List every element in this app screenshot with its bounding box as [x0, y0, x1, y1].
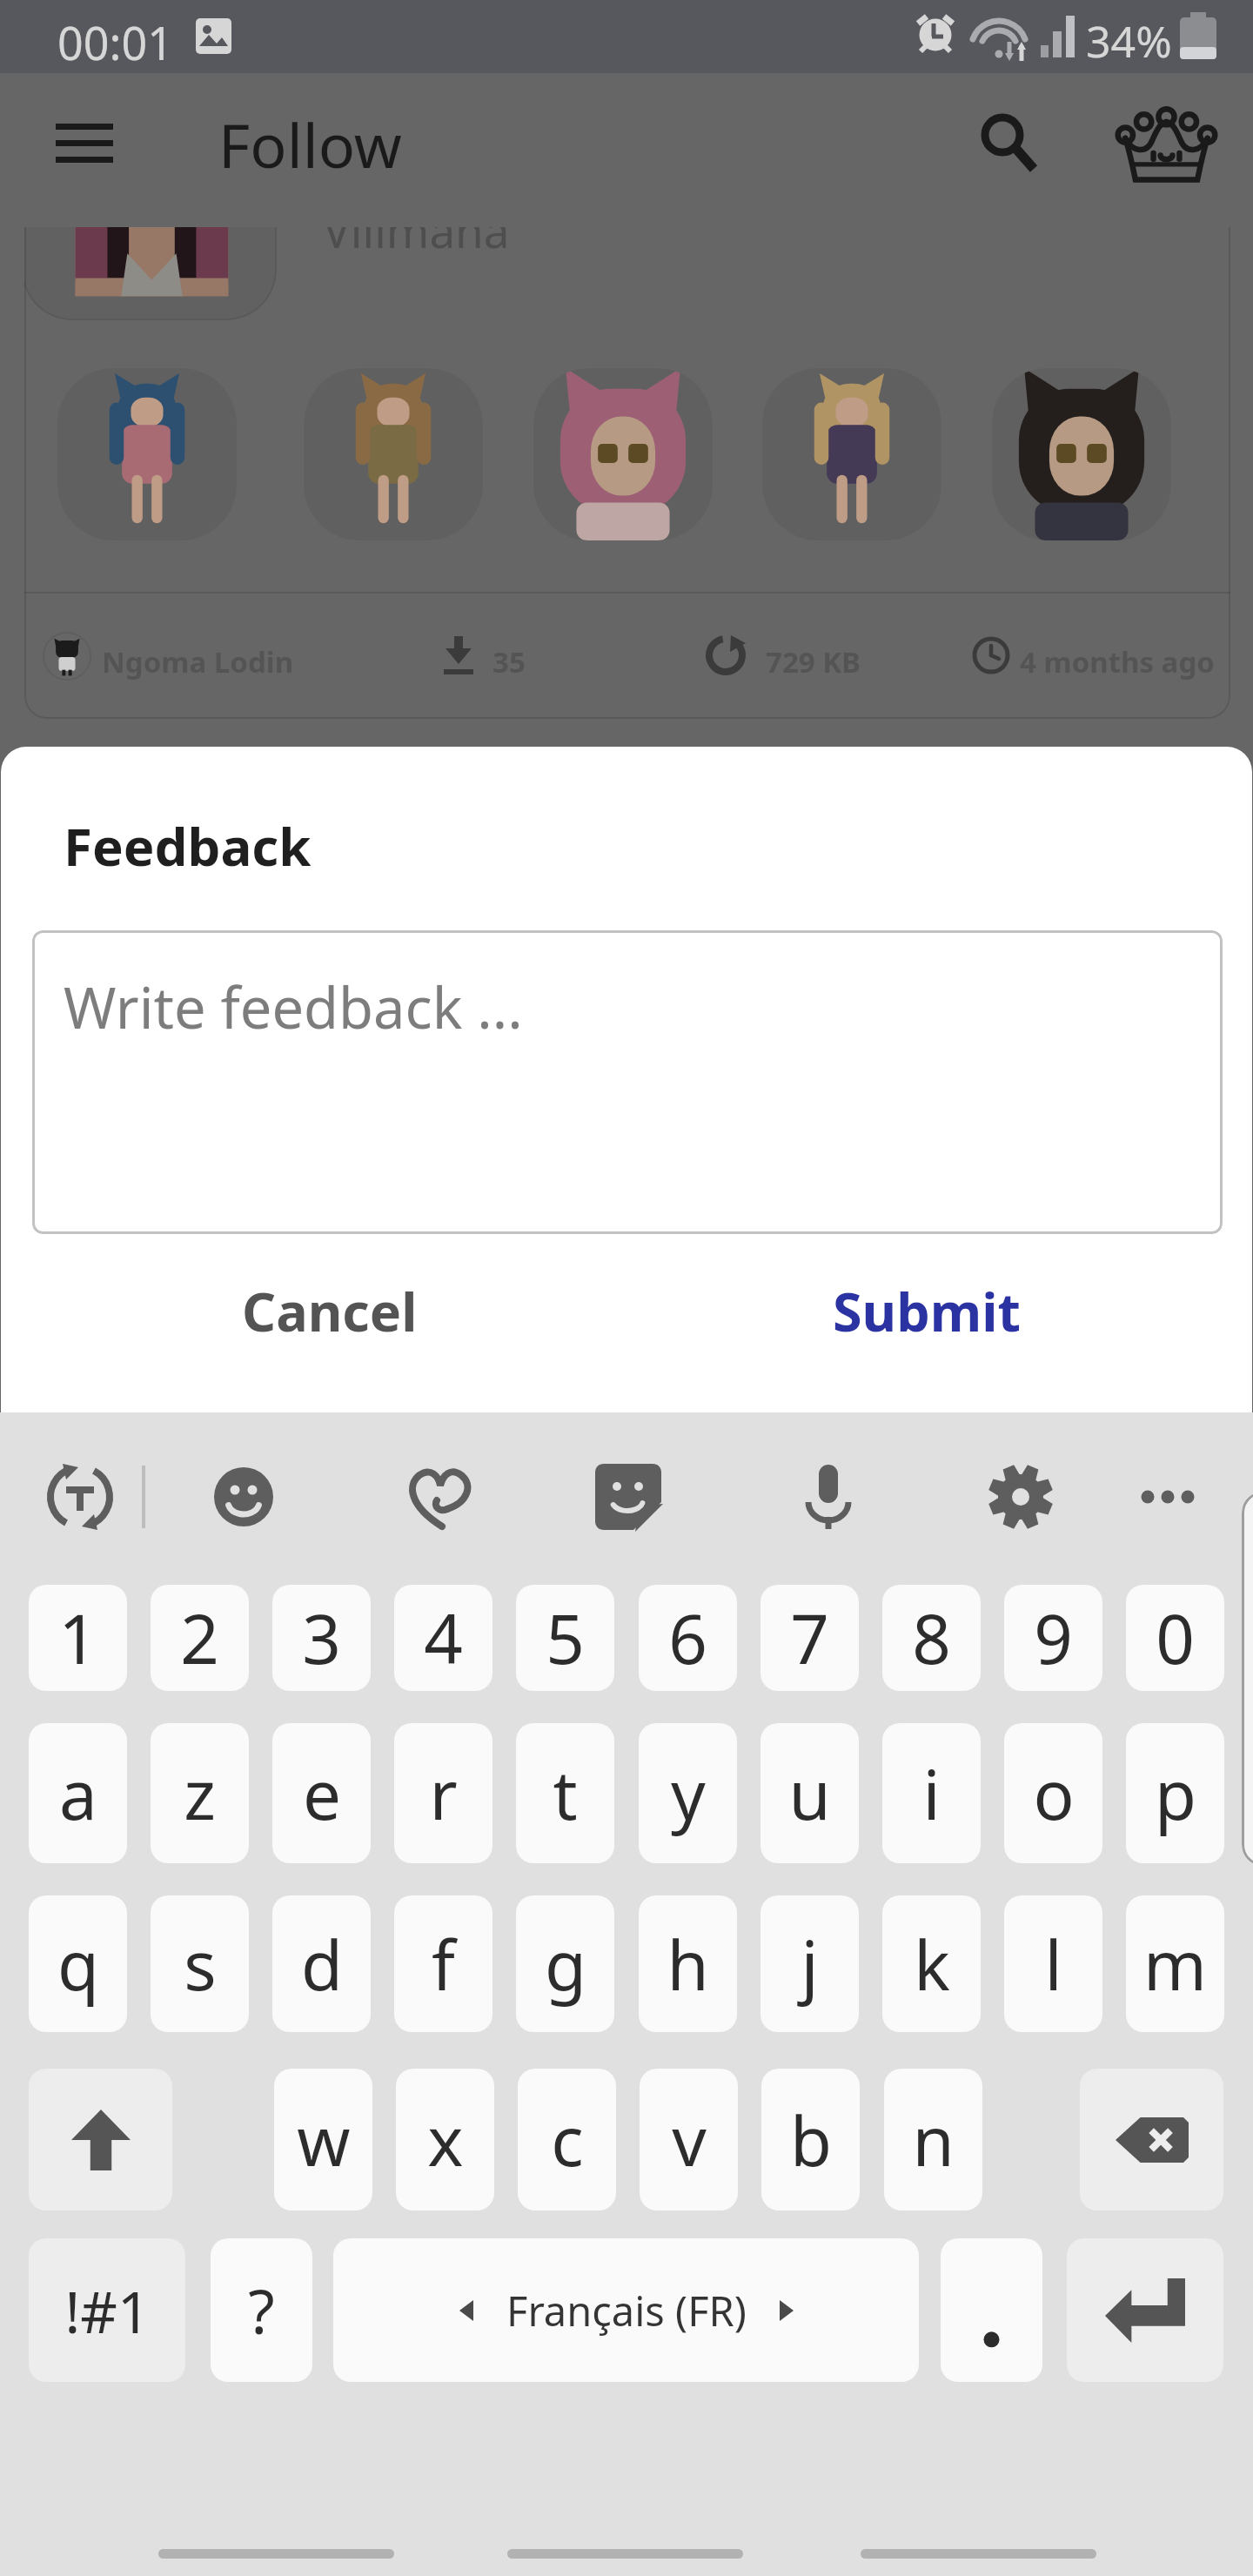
staticText: Follow: [218, 103, 402, 185]
staticText: 5: [546, 1592, 585, 1684]
staticText: 35: [492, 642, 526, 681]
button[interactable]: 2: [151, 1585, 249, 1691]
button[interactable]: t: [516, 1723, 614, 1863]
button[interactable]: Shift: [29, 2069, 172, 2210]
button[interactable]: e: [272, 1723, 371, 1863]
button[interactable]: o: [1004, 1723, 1102, 1863]
button[interactable]: f: [394, 1895, 492, 2032]
button[interactable]: z: [151, 1723, 249, 1863]
button[interactable]: [941, 2238, 1042, 2382]
staticText: 00:01: [57, 11, 173, 73]
button[interactable]: Backspace: [1080, 2069, 1223, 2210]
button[interactable]: Search: [966, 96, 1049, 179]
staticText: r: [429, 1748, 458, 1840]
staticText: f: [432, 1918, 455, 2010]
button[interactable]: Viilmana: [24, 57, 1230, 719]
button[interactable]: Enter: [1067, 2238, 1223, 2382]
button[interactable]: h: [639, 1895, 737, 2032]
button[interactable]: n: [884, 2069, 982, 2210]
button[interactable]: More options: [1137, 1466, 1198, 1527]
button[interactable]: d: [272, 1895, 371, 2032]
staticText: Viilmana: [323, 198, 510, 261]
staticText: Feedback: [64, 810, 312, 882]
button[interactable]: 9: [1004, 1585, 1102, 1691]
button[interactable]: w: [274, 2069, 372, 2210]
button[interactable]: Translate: [44, 1460, 117, 1533]
button[interactable]: c: [518, 2069, 616, 2210]
button[interactable]: Write feedback ...: [32, 930, 1223, 1234]
staticText: 6: [668, 1592, 707, 1684]
button[interactable]: !#1: [29, 2238, 185, 2382]
button[interactable]: p: [1126, 1723, 1224, 1863]
button[interactable]: ?: [211, 2238, 312, 2382]
button[interactable]: y: [639, 1723, 737, 1863]
staticText: u: [788, 1748, 831, 1840]
staticText: 4 months ago: [1020, 642, 1215, 681]
staticText: a: [59, 1748, 97, 1840]
staticText: w: [297, 2094, 351, 2186]
staticText: y: [671, 1748, 706, 1840]
staticText: 4: [424, 1592, 463, 1684]
staticText: t: [553, 1748, 578, 1840]
button[interactable]: Keyboard settings: [988, 1464, 1054, 1530]
button[interactable]: Favourite stickers: [407, 1466, 470, 1528]
button[interactable]: i: [882, 1723, 981, 1863]
button[interactable]: 3: [272, 1585, 371, 1691]
staticText: 9: [1034, 1592, 1073, 1684]
staticText: 3: [302, 1592, 341, 1684]
button[interactable]: m: [1126, 1895, 1224, 2032]
button[interactable]: g: [516, 1895, 614, 2032]
button[interactable]: Emoji: [213, 1466, 274, 1527]
button[interactable]: Sticker: [595, 1464, 661, 1530]
staticText: 7: [790, 1592, 829, 1684]
staticText: q: [57, 1918, 99, 2010]
button[interactable]: Français (FR): [333, 2238, 919, 2382]
button[interactable]: Voice input: [794, 1463, 862, 1531]
staticText: c: [551, 2094, 584, 2186]
button[interactable]: s: [151, 1895, 249, 2032]
staticText: l: [1044, 1918, 1062, 2010]
button[interactable]: u: [761, 1723, 859, 1863]
button[interactable]: Premium: [1109, 95, 1221, 196]
button[interactable]: l: [1004, 1895, 1102, 2032]
button[interactable]: 1: [29, 1585, 127, 1691]
button[interactable]: a: [29, 1723, 127, 1863]
staticText: p: [1155, 1748, 1196, 1840]
button[interactable]: Cancel: [163, 1253, 497, 1368]
staticText: !#1: [64, 2271, 151, 2350]
button[interactable]: r: [394, 1723, 492, 1863]
button[interactable]: 0: [1126, 1585, 1224, 1691]
staticText: Français (FR): [506, 2283, 747, 2338]
staticText: Cancel: [242, 1275, 418, 1347]
button[interactable]: x: [396, 2069, 494, 2210]
staticText: 2: [180, 1592, 219, 1684]
staticText: s: [184, 1918, 217, 2010]
button[interactable]: q: [29, 1895, 127, 2032]
staticText: o: [1033, 1748, 1075, 1840]
staticText: Write feedback ...: [64, 969, 523, 1046]
staticText: 0: [1156, 1592, 1195, 1684]
button[interactable]: 5: [516, 1585, 614, 1691]
staticText: Ngoma Lodin: [102, 642, 294, 681]
staticText: 34%: [1086, 11, 1172, 70]
staticText: g: [545, 1918, 586, 2010]
staticText: 1: [58, 1592, 97, 1684]
button[interactable]: 8: [882, 1585, 981, 1691]
button[interactable]: v: [640, 2069, 738, 2210]
staticText: i: [922, 1748, 941, 1840]
button[interactable]: k: [882, 1895, 981, 2032]
staticText: n: [912, 2094, 955, 2186]
button[interactable]: 7: [761, 1585, 859, 1691]
staticText: m: [1143, 1918, 1207, 2010]
button[interactable]: j: [761, 1895, 859, 2032]
staticText: z: [184, 1748, 216, 1840]
staticText: v: [672, 2094, 707, 2186]
staticText: Submit: [833, 1275, 1022, 1347]
staticText: x: [427, 2094, 464, 2186]
button[interactable]: b: [761, 2069, 860, 2210]
button[interactable]: Menu: [33, 96, 117, 179]
button[interactable]: 4: [394, 1585, 492, 1691]
button[interactable]: Submit: [760, 1253, 1094, 1368]
button[interactable]: 6: [639, 1585, 737, 1691]
staticText: d: [301, 1918, 343, 2010]
